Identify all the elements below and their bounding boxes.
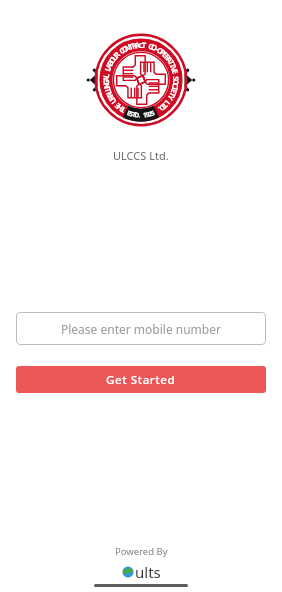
button[interactable]: Get Started	[16, 366, 266, 393]
staticText: Powered By	[115, 545, 168, 558]
staticText: ULCCS Ltd.	[113, 148, 169, 163]
staticText: Please enter mobile number	[61, 321, 221, 337]
staticText: ults	[135, 562, 161, 582]
button[interactable]: Please enter mobile number	[16, 312, 266, 345]
staticText: Get Started	[106, 372, 176, 388]
